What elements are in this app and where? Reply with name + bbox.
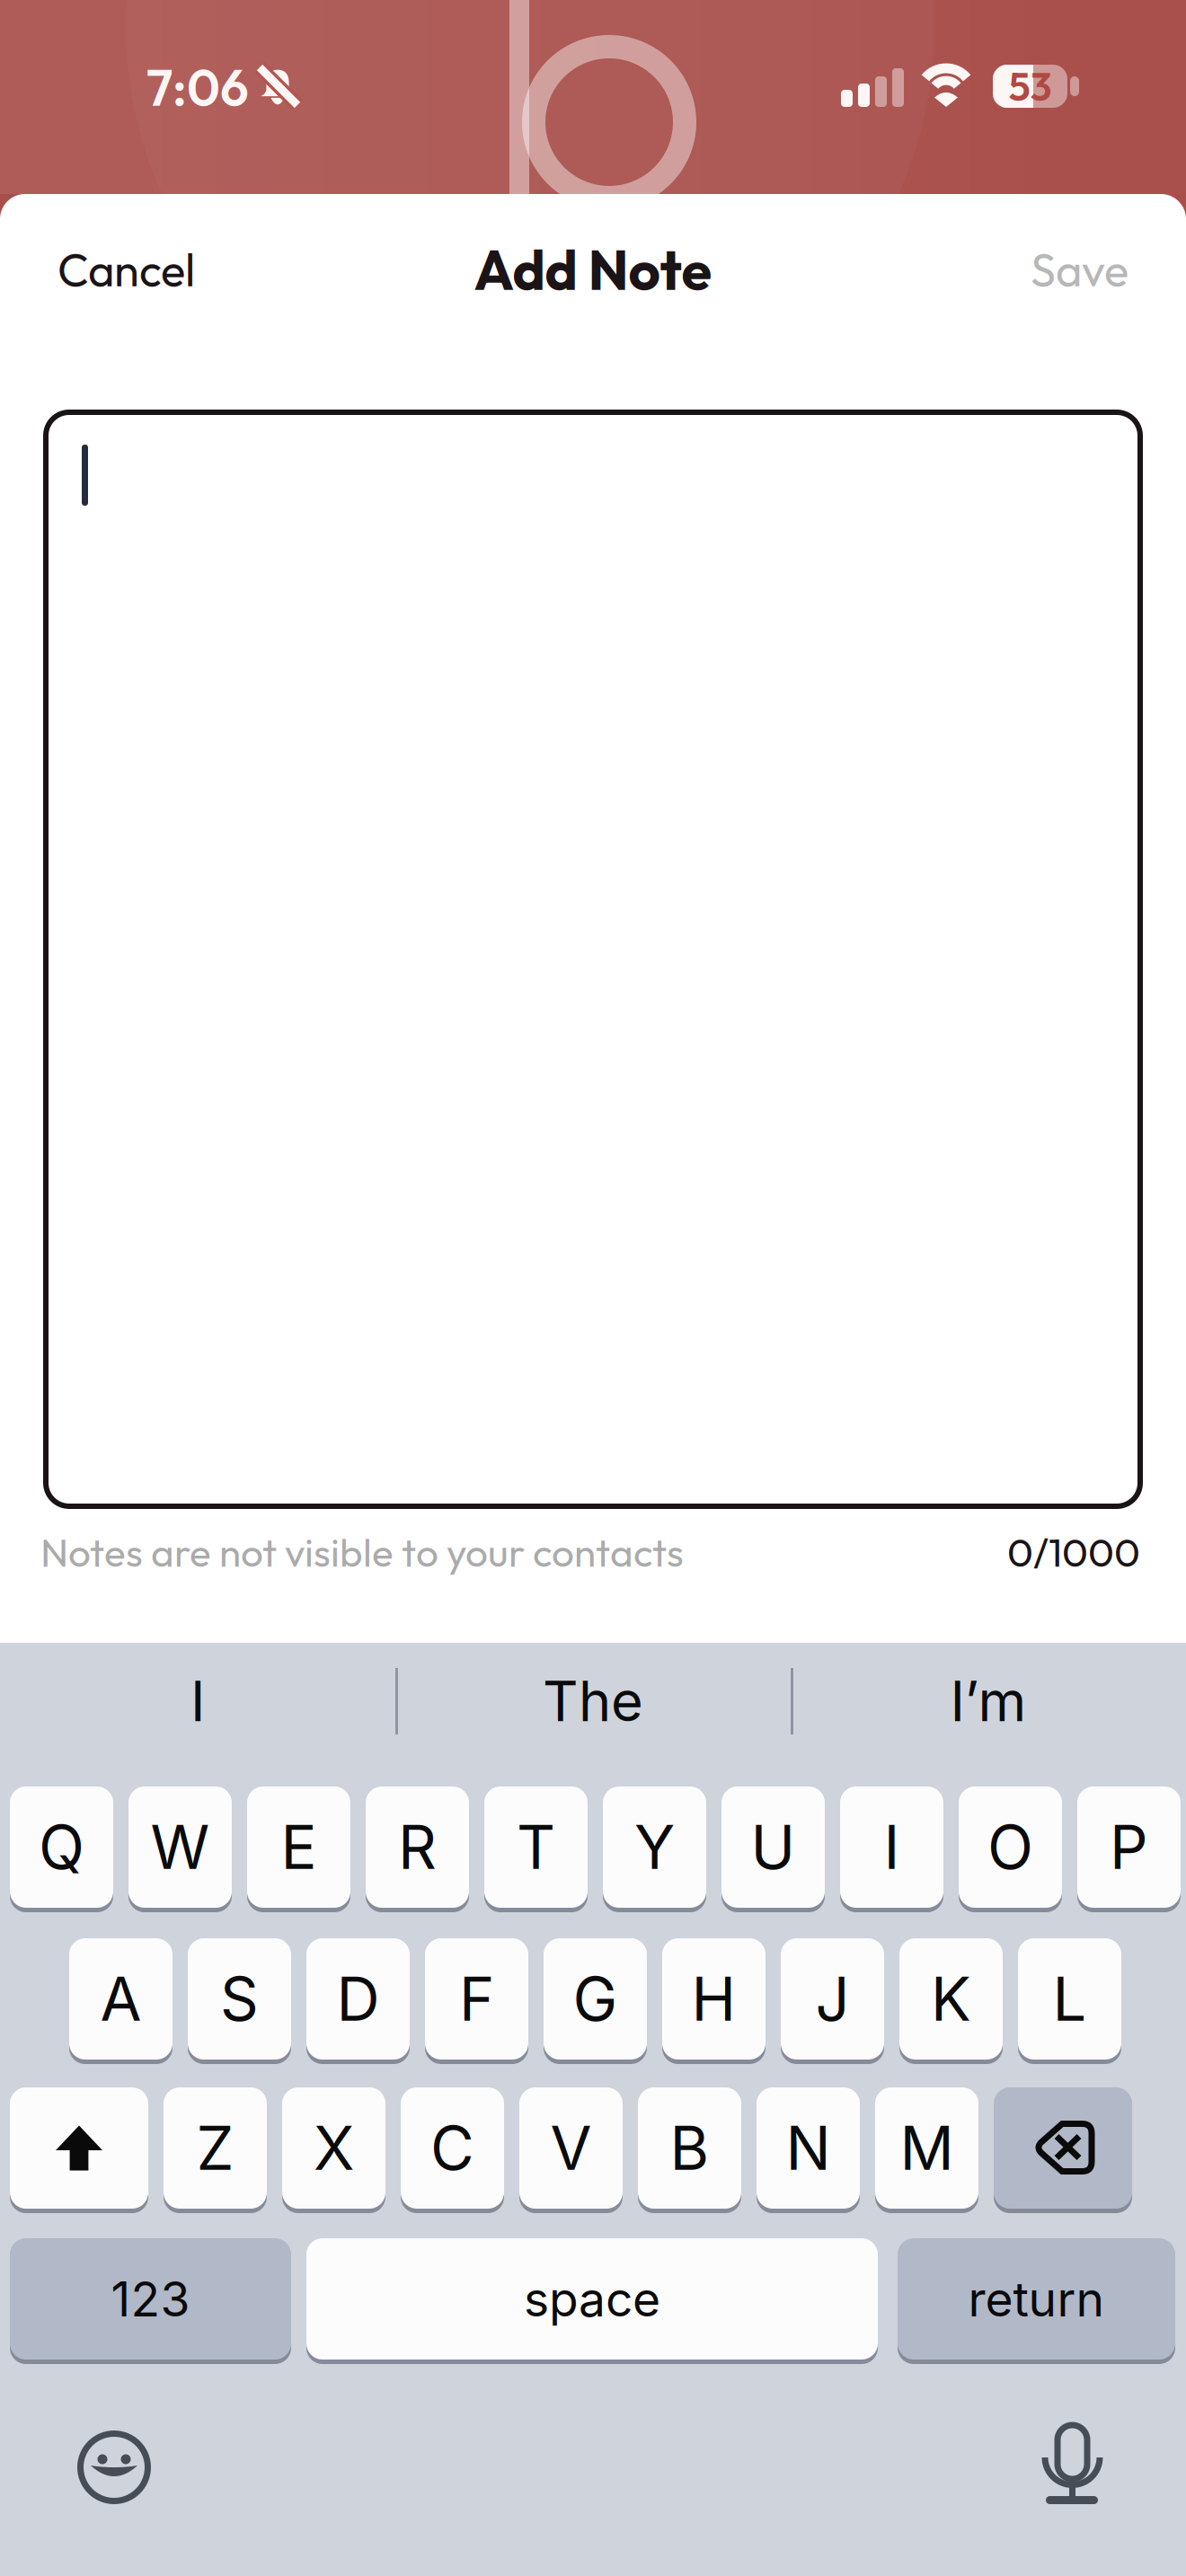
staticText: N — [786, 2112, 831, 2184]
button[interactable]: Q — [10, 1786, 113, 1912]
button[interactable]: Cancel — [52, 223, 200, 316]
staticText: S — [220, 1963, 259, 2035]
staticText: R — [398, 1811, 437, 1883]
button[interactable]: Y — [603, 1786, 706, 1912]
staticText: M — [900, 2112, 954, 2184]
button[interactable]: P — [1077, 1786, 1181, 1912]
button[interactable]: The — [395, 1643, 791, 1760]
button[interactable]: space — [306, 2238, 878, 2364]
button[interactable]: H — [662, 1938, 766, 2064]
button[interactable]: R — [366, 1786, 469, 1912]
staticText: The — [543, 1668, 643, 1734]
button[interactable]: C — [401, 2087, 504, 2213]
button[interactable]: J — [781, 1938, 884, 2064]
button[interactable]: N — [757, 2087, 860, 2213]
button[interactable]: V — [519, 2087, 623, 2213]
button[interactable]: X — [282, 2087, 385, 2213]
staticText: 53 — [1009, 61, 1052, 111]
button[interactable]: Shift — [10, 2087, 148, 2213]
staticText: Y — [634, 1811, 675, 1883]
staticText: F — [459, 1963, 494, 2035]
button[interactable]: Save — [1025, 223, 1134, 316]
button[interactable]: Dictation — [1043, 2425, 1102, 2524]
staticText: Z — [196, 2112, 234, 2184]
button[interactable]: D — [306, 1938, 410, 2064]
staticText: 123 — [111, 2270, 190, 2328]
staticText: U — [751, 1811, 796, 1883]
staticText: C — [430, 2112, 474, 2184]
staticText: Add Note — [474, 235, 712, 304]
button[interactable]: I’m — [791, 1643, 1186, 1760]
staticText: I — [190, 1668, 205, 1734]
staticText: Notes are not visible to your contacts — [40, 1527, 684, 1577]
staticText: I — [884, 1811, 900, 1883]
button[interactable]: W — [128, 1786, 232, 1912]
button[interactable]: U — [721, 1786, 825, 1912]
staticText: A — [100, 1963, 142, 2035]
staticText: O — [987, 1811, 1033, 1883]
staticText: 7:06 — [146, 55, 249, 119]
staticText: K — [931, 1963, 971, 2035]
staticText: return — [968, 2270, 1105, 2328]
staticText: Q — [39, 1811, 84, 1883]
button[interactable]: Emoji keyboard — [65, 2418, 164, 2517]
staticText: I’m — [950, 1668, 1027, 1734]
button[interactable]: B — [638, 2087, 741, 2213]
staticText: B — [670, 2112, 709, 2184]
staticText: L — [1053, 1963, 1087, 2035]
staticText: V — [550, 2112, 592, 2184]
button[interactable]: E — [247, 1786, 350, 1912]
staticText: D — [336, 1963, 380, 2035]
staticText: space — [524, 2270, 660, 2328]
button[interactable]: Delete — [994, 2087, 1132, 2213]
staticText: 0/1000 — [1007, 1527, 1140, 1577]
staticText: E — [281, 1811, 317, 1883]
button[interactable]: L — [1018, 1938, 1121, 2064]
staticText: X — [314, 2112, 354, 2184]
button[interactable]: A — [69, 1938, 173, 2064]
button[interactable]: T — [484, 1786, 588, 1912]
button[interactable]: F — [425, 1938, 528, 2064]
staticText: H — [691, 1963, 736, 2035]
button[interactable]: G — [544, 1938, 647, 2064]
button[interactable]: 123 — [10, 2238, 291, 2364]
button[interactable]: S — [188, 1938, 291, 2064]
staticText: Cancel — [58, 241, 195, 298]
staticText: Save — [1031, 241, 1128, 298]
staticText: J — [815, 1963, 850, 2035]
staticText: P — [1110, 1811, 1148, 1883]
button[interactable]: return — [898, 2238, 1175, 2364]
button[interactable]: O — [959, 1786, 1062, 1912]
staticText: W — [150, 1811, 210, 1883]
button[interactable]: M — [875, 2087, 978, 2213]
staticText: T — [517, 1811, 555, 1883]
button[interactable]: Z — [164, 2087, 267, 2213]
button[interactable]: K — [899, 1938, 1003, 2064]
button[interactable]: I — [0, 1643, 395, 1760]
staticText: G — [573, 1963, 618, 2035]
button[interactable]: I — [840, 1786, 943, 1912]
